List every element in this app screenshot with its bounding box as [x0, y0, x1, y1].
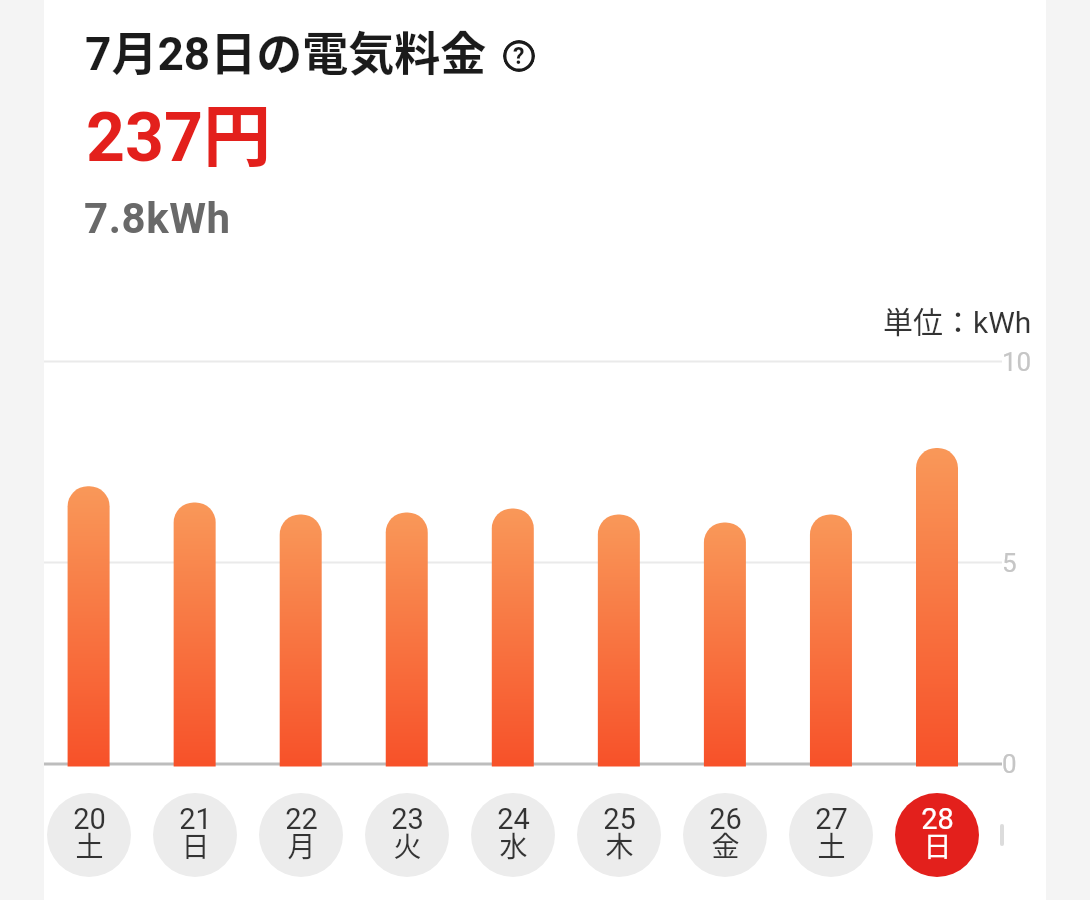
staticText: 237円	[86, 82, 272, 180]
staticText: 日	[181, 825, 210, 866]
staticText: 金	[711, 825, 740, 866]
staticText: 25	[603, 802, 636, 836]
staticText: 26	[709, 802, 742, 836]
staticText: 5	[1002, 548, 1017, 578]
staticText: 土	[817, 825, 846, 866]
button[interactable]: 25	[577, 793, 661, 877]
staticText: 10	[1002, 347, 1032, 377]
button[interactable]: ?	[503, 40, 535, 72]
button[interactable]: 27	[789, 793, 873, 877]
button[interactable]: 23	[365, 793, 449, 877]
button[interactable]: 26	[683, 793, 767, 877]
button[interactable]: 24	[471, 793, 555, 877]
staticText: 22	[285, 802, 318, 836]
staticText: 28	[921, 802, 954, 836]
button[interactable]: 21	[153, 793, 237, 877]
staticText: 土	[75, 825, 104, 866]
staticText: 21	[179, 802, 212, 836]
staticText: 日	[923, 825, 952, 866]
staticText: 単位：kWh	[883, 298, 1032, 341]
staticText: 20	[73, 802, 106, 836]
button[interactable]: 28	[895, 793, 979, 877]
staticText: 木	[605, 825, 634, 866]
staticText: 7月28日の電気料金	[85, 17, 487, 84]
staticText: 0	[1002, 749, 1017, 779]
staticText: 7.8kWh	[84, 194, 231, 243]
staticText: 27	[815, 802, 848, 836]
staticText: 24	[497, 802, 530, 836]
staticText: 火	[393, 825, 422, 866]
staticText: ?	[513, 43, 525, 70]
staticText: 23	[391, 802, 424, 836]
button[interactable]: 20	[47, 793, 131, 877]
button[interactable]: 22	[259, 793, 343, 877]
staticText: 水	[499, 825, 528, 866]
staticText: 月	[287, 825, 316, 866]
